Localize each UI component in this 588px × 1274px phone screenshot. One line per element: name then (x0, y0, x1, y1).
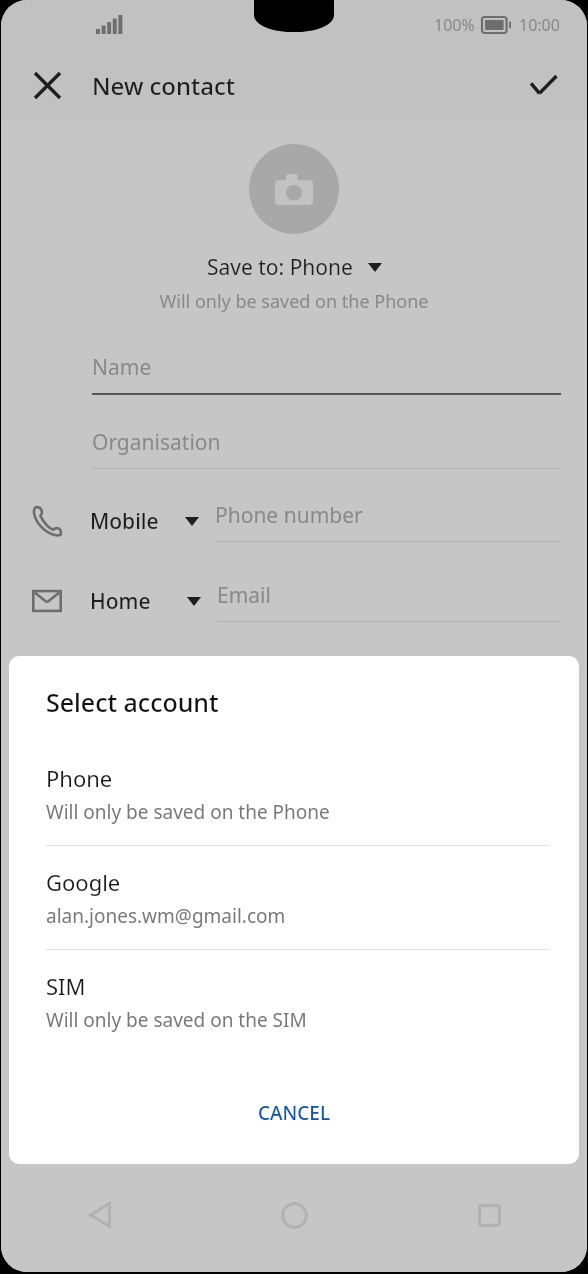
staticText: Organisation (92, 428, 221, 457)
staticText: Home (90, 587, 151, 616)
staticText: Google (46, 867, 121, 897)
button[interactable]: Add photo (249, 144, 339, 234)
staticText: Name (92, 353, 152, 382)
button[interactable]: Phone number (215, 501, 561, 542)
button[interactable]: Name (92, 353, 561, 395)
button[interactable]: Recent apps (392, 1190, 587, 1240)
button[interactable]: Email (217, 581, 561, 622)
button[interactable]: SIM (9, 971, 579, 1053)
button[interactable]: Phone (9, 763, 579, 845)
staticText: Save to: Phone (207, 253, 353, 282)
staticText: Will only be saved on the Phone (1, 289, 587, 314)
staticText: Select account (46, 685, 219, 719)
staticText: SIM (46, 971, 86, 1001)
button[interactable]: Google (9, 867, 579, 949)
button[interactable]: Save (517, 59, 569, 111)
staticText: Phone (46, 763, 113, 793)
staticText: Will only be saved on the Phone (46, 799, 330, 825)
button[interactable]: CANCEL (240, 1088, 349, 1138)
staticText: Will only be saved on the SIM (46, 1007, 307, 1033)
staticText: Email (217, 581, 271, 610)
staticText: alan.jones.wm@gmail.com (46, 903, 286, 929)
button[interactable]: Home (90, 587, 201, 616)
button[interactable]: Close (21, 59, 73, 111)
button[interactable]: Mobile (90, 507, 199, 536)
staticText: Phone number (215, 501, 363, 530)
staticText: Mobile (90, 507, 159, 536)
staticText: 100% (434, 14, 475, 36)
button[interactable]: Organisation (92, 428, 561, 469)
staticText: 10:00 (519, 14, 560, 36)
staticText: New contact (92, 69, 235, 102)
button[interactable]: Save to: Phone (1, 253, 587, 282)
staticText: CANCEL (258, 1100, 331, 1126)
